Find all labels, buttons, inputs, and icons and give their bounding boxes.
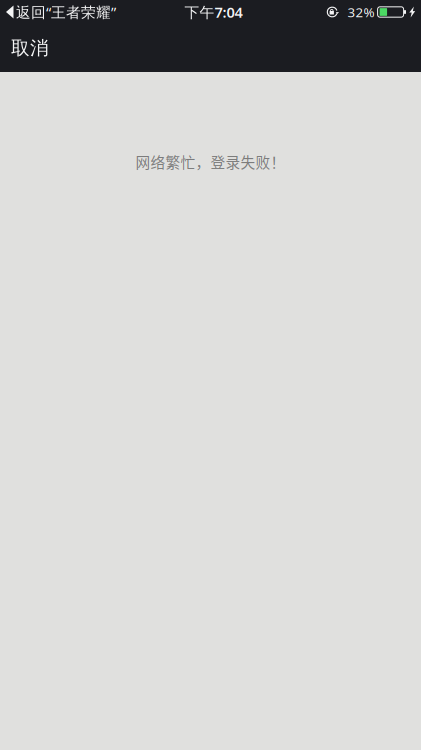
staticText: 返回“王者荣耀” xyxy=(16,2,116,22)
button[interactable]: 取消 xyxy=(0,24,59,72)
button[interactable]: 返回“王者荣耀” xyxy=(0,0,116,24)
staticText: 下午7:04 xyxy=(184,2,242,22)
staticText: 取消 xyxy=(11,36,49,59)
staticText: 网络繁忙，登录失败！ xyxy=(135,151,285,172)
staticText: 32% xyxy=(348,3,375,21)
